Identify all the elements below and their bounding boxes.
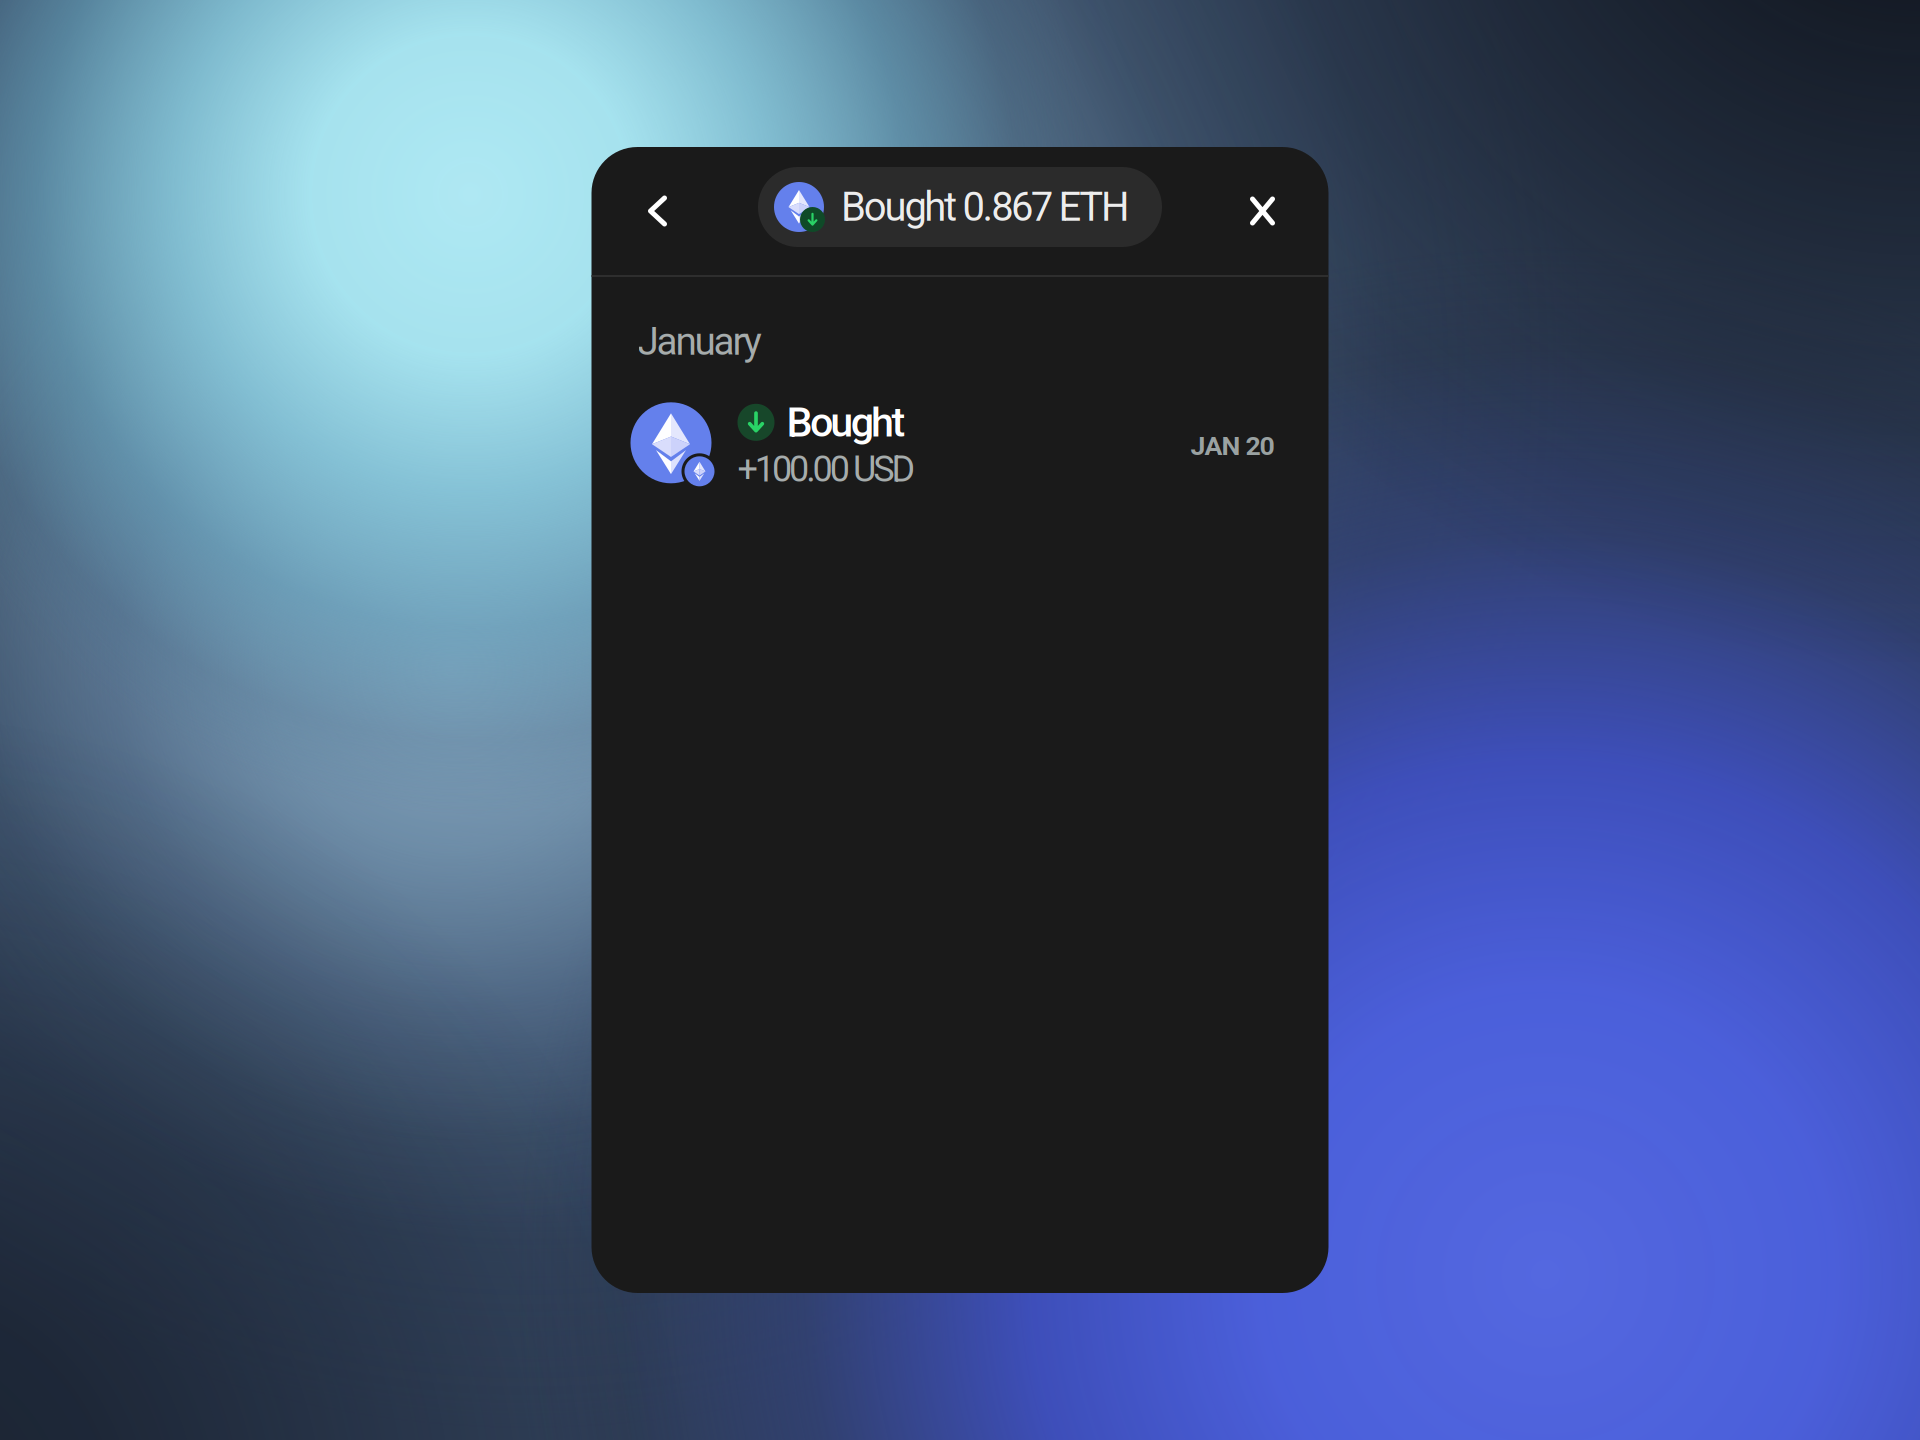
staticText: Bought (786, 398, 905, 446)
staticText: JAN 20 (1190, 430, 1274, 461)
staticText: January (637, 319, 761, 364)
button[interactable]: Close (1225, 174, 1299, 248)
staticText: Bought 0.867 ETH (841, 184, 1130, 230)
button[interactable]: Bought (591, 364, 1328, 493)
staticText: +100.00 USD (737, 448, 915, 490)
button[interactable]: Back (620, 174, 694, 248)
